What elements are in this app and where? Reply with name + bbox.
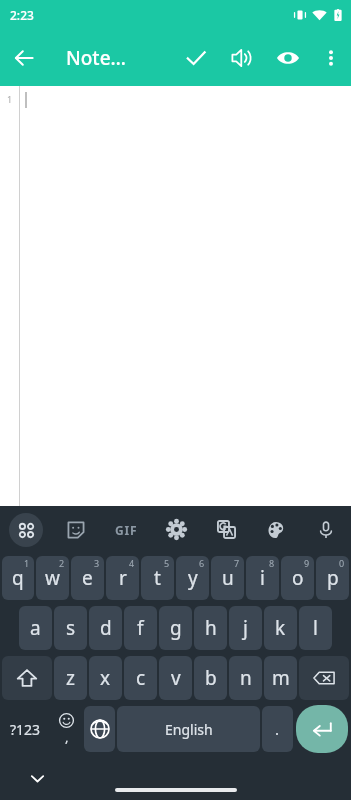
button[interactable]: g xyxy=(159,606,192,650)
staticText: p xyxy=(327,565,339,591)
button[interactable]: u xyxy=(211,556,244,600)
button[interactable]: j xyxy=(229,606,262,650)
button[interactable]: s xyxy=(54,606,87,650)
button[interactable]: Save xyxy=(173,35,219,81)
button[interactable]: o xyxy=(281,556,314,600)
staticText: 4 xyxy=(129,557,135,569)
button[interactable]: f xyxy=(124,606,157,650)
staticText: GIF xyxy=(115,522,138,538)
button[interactable]: m xyxy=(264,656,297,700)
button[interactable]: w xyxy=(36,556,69,600)
button[interactable]: k xyxy=(264,606,297,650)
staticText: 9 xyxy=(304,557,310,569)
button[interactable]: c xyxy=(124,656,157,700)
button[interactable]: Shift xyxy=(2,656,52,700)
staticText: a xyxy=(30,615,41,641)
button[interactable]: ?123 xyxy=(2,706,49,752)
staticText: 0 xyxy=(339,557,345,569)
staticText: r xyxy=(119,565,127,591)
button[interactable]: Emoji xyxy=(51,706,82,752)
staticText: 2 xyxy=(59,557,65,569)
button[interactable]: y xyxy=(176,556,209,600)
staticText: x xyxy=(100,665,111,691)
staticText: English xyxy=(165,720,213,739)
staticText: u xyxy=(222,565,234,591)
staticText: m xyxy=(272,665,290,691)
staticText: d xyxy=(100,615,112,641)
staticText: n xyxy=(240,665,252,691)
button[interactable]: h xyxy=(194,606,227,650)
button[interactable]: Read aloud xyxy=(219,35,265,81)
staticText: g xyxy=(170,615,182,641)
button[interactable]: e xyxy=(71,556,104,600)
staticText: b xyxy=(205,665,217,691)
staticText: 6 xyxy=(199,557,205,569)
button[interactable]: Back xyxy=(0,34,48,82)
button[interactable]: Theme xyxy=(251,506,301,553)
staticText: j xyxy=(243,615,248,641)
button[interactable]: r xyxy=(106,556,139,600)
button[interactable]: d xyxy=(89,606,122,650)
staticText: k xyxy=(275,615,286,641)
staticText: t xyxy=(154,565,161,591)
staticText: o xyxy=(292,565,304,591)
button[interactable]: v xyxy=(159,656,192,700)
staticText: . xyxy=(275,719,280,739)
staticText: 1 xyxy=(7,93,13,105)
staticText: 1 xyxy=(24,557,30,569)
staticText: w xyxy=(45,565,60,591)
button[interactable]: More options xyxy=(311,38,351,78)
staticText: ?123 xyxy=(10,720,41,739)
button[interactable]: a xyxy=(19,606,52,650)
button[interactable]: Enter xyxy=(296,705,348,753)
button[interactable]: q xyxy=(2,556,34,600)
button[interactable]: Voice input xyxy=(301,506,351,553)
staticText: z xyxy=(66,665,75,691)
staticText: 7 xyxy=(234,557,240,569)
button[interactable]: Language xyxy=(84,706,115,752)
button[interactable]: p xyxy=(316,556,349,600)
button[interactable]: . xyxy=(262,706,293,752)
staticText: 2:23 xyxy=(10,7,34,23)
staticText: c xyxy=(136,665,146,691)
staticText: e xyxy=(82,565,93,591)
button[interactable]: Stickers xyxy=(51,506,101,553)
button[interactable]: z xyxy=(54,656,87,700)
button[interactable]: Translate xyxy=(201,506,251,553)
staticText: , xyxy=(65,728,69,746)
button[interactable]: Settings xyxy=(151,506,201,553)
button[interactable]: Backspace xyxy=(299,656,349,700)
button[interactable]: Hide keyboard xyxy=(22,763,52,793)
button[interactable]: GIF xyxy=(101,506,151,553)
button[interactable]: l xyxy=(299,606,332,650)
staticText: v xyxy=(171,665,181,691)
staticText: Note… xyxy=(66,45,126,71)
button[interactable]: Keyboard modes xyxy=(0,506,51,553)
staticText: 3 xyxy=(94,557,100,569)
staticText: i xyxy=(260,565,265,591)
staticText: h xyxy=(205,615,217,641)
staticText: y xyxy=(188,565,198,591)
button[interactable]: x xyxy=(89,656,122,700)
button[interactable]: t xyxy=(141,556,174,600)
staticText: 8 xyxy=(269,557,275,569)
staticText: l xyxy=(313,615,318,641)
button[interactable]: Preview xyxy=(265,35,311,81)
staticText: q xyxy=(12,565,24,591)
button[interactable]: n xyxy=(229,656,262,700)
button[interactable]: b xyxy=(194,656,227,700)
staticText: f xyxy=(137,615,144,641)
staticText: 5 xyxy=(164,557,170,569)
button[interactable]: i xyxy=(246,556,279,600)
staticText: s xyxy=(66,615,76,641)
button[interactable]: English xyxy=(117,706,260,752)
